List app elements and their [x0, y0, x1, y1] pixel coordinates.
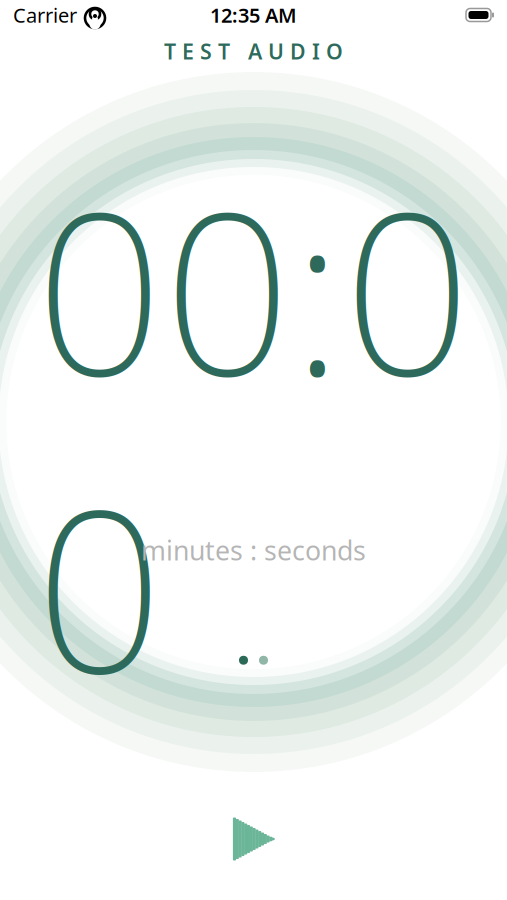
staticText: 12:35 AM	[210, 2, 297, 28]
staticText: T E S T A U D I O	[164, 37, 343, 65]
staticText: Carrier	[13, 2, 77, 28]
button[interactable]: Play	[203, 802, 303, 876]
staticText: 00:00	[35, 140, 471, 735]
button[interactable]: T E S T A U D I O	[0, 30, 507, 72]
staticText: minutes : seconds	[141, 532, 366, 568]
